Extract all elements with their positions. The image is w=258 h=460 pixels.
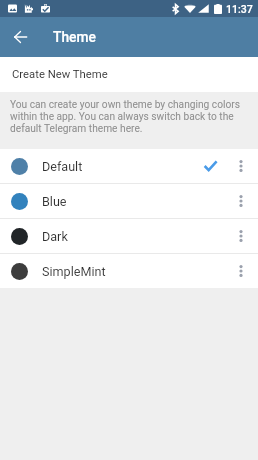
button[interactable]: SimpleMint <box>0 254 258 288</box>
button[interactable]: More options <box>233 254 249 288</box>
staticText: SimpleMint <box>42 264 106 279</box>
button[interactable]: Dark <box>0 219 258 253</box>
button[interactable]: Default <box>0 149 258 183</box>
staticText: 11:37 <box>226 3 253 15</box>
staticText: Dark <box>42 229 68 244</box>
staticText: You can create your own theme by changin… <box>10 99 250 135</box>
button[interactable]: Back <box>0 17 40 57</box>
button[interactable]: Create New Theme <box>0 57 258 92</box>
staticText: Theme <box>53 29 96 45</box>
button[interactable]: Blue <box>0 184 258 218</box>
staticText: Default <box>42 159 83 174</box>
button[interactable]: More options <box>233 184 249 218</box>
staticText: Create New Theme <box>12 68 108 81</box>
button[interactable]: More options <box>233 219 249 253</box>
staticText: Blue <box>42 194 67 209</box>
button[interactable]: More options <box>233 149 249 183</box>
